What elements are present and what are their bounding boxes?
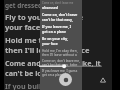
staticText: Hold me, I'm okay then, and — [42, 49, 80, 53]
staticText: Come on, don't leave me, it — [42, 12, 80, 17]
staticText: then I'll leave without a trace — [42, 53, 80, 57]
staticText: your face — [5, 22, 41, 32]
staticText: obsessed — [42, 5, 59, 10]
staticText: Fly to you just to see — [5, 12, 83, 22]
button[interactable]: Captions — [98, 75, 107, 84]
staticText: get on a plane — [42, 73, 64, 77]
button[interactable]: Come on, don't leave me maahh — [40, 0, 82, 90]
staticText: Come on, don't leave me, it — [42, 59, 80, 63]
staticText: If you leave me, I guess I'll — [42, 24, 80, 29]
staticText: can't be that easy, babe — [42, 17, 80, 22]
staticText: then I'll leave no trace — [5, 45, 90, 55]
button[interactable]: Play — [59, 73, 72, 86]
staticText: your face — [42, 41, 58, 46]
staticText: can't be that easy, babe — [42, 63, 78, 67]
staticText: get on a plane — [42, 29, 67, 34]
staticText: If you build a wall I'll — [5, 81, 80, 90]
staticText: Hold me tight and — [5, 35, 74, 45]
staticText: get dressed — [5, 1, 43, 10]
button[interactable]: Seek bar — [4, 61, 112, 70]
staticText: Be on your city, excited to see — [42, 36, 80, 41]
staticText: Come and go as you like, it — [5, 58, 101, 68]
staticText: Come on, don't leave me maahh — [42, 1, 80, 5]
staticText: can't be love anyway — [5, 68, 80, 78]
staticText: If you leave me, I guess I'll — [42, 69, 80, 73]
